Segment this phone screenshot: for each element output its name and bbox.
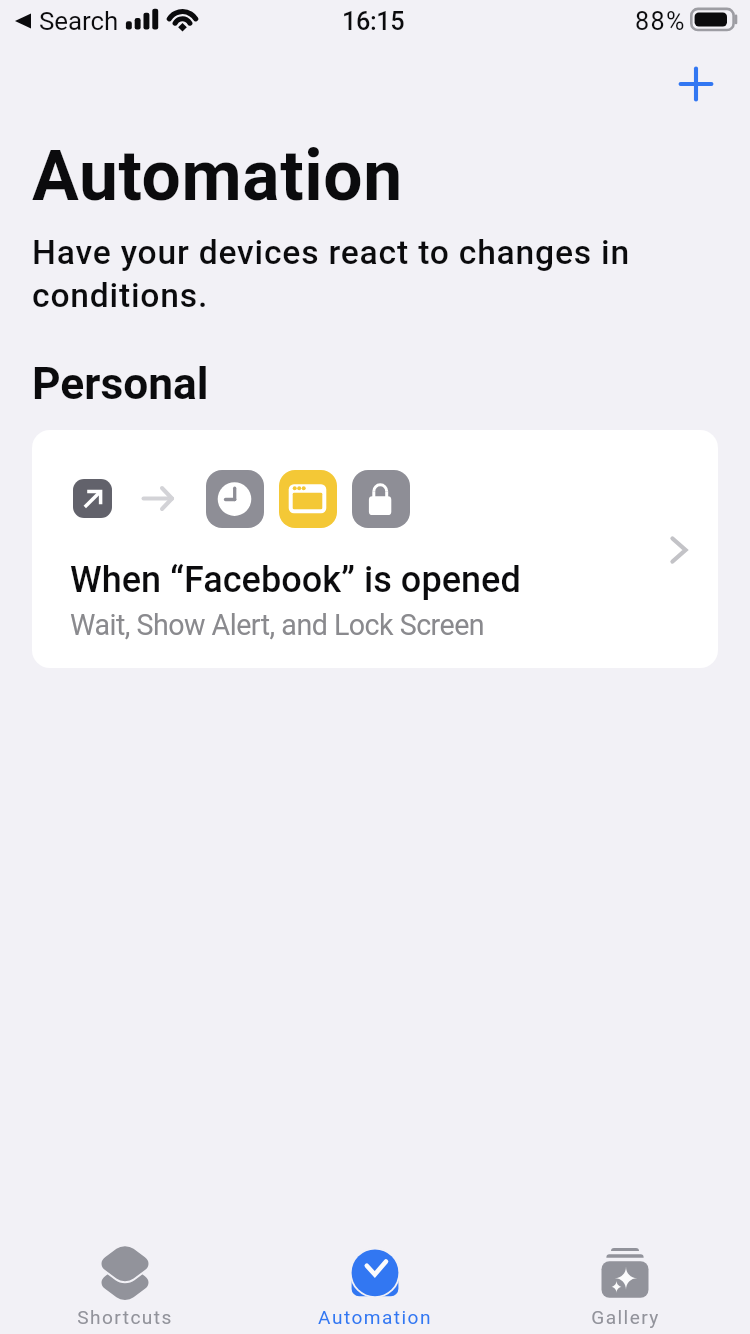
staticText: Search (39, 6, 119, 36)
staticText: Have your devices react to changes in co… (32, 233, 630, 316)
staticText: 88% (635, 7, 686, 37)
staticText: Wait, Show Alert, and Lock Screen (70, 608, 485, 642)
button[interactable]: Create Automation (660, 48, 732, 120)
button[interactable]: Gallery (500, 1238, 750, 1334)
button[interactable]: Shortcuts (0, 1238, 250, 1334)
staticText: Shortcuts (77, 1306, 173, 1328)
staticText: Gallery (591, 1306, 660, 1328)
button[interactable]: Automation (250, 1238, 500, 1334)
staticText: 16:15 (342, 7, 405, 37)
staticText: Automation (318, 1306, 432, 1328)
staticText: When “Facebook” is opened (70, 559, 521, 601)
button[interactable]: When “Facebook” is opened (32, 430, 718, 668)
staticText: Personal (32, 358, 209, 410)
staticText: Automation (32, 136, 403, 217)
